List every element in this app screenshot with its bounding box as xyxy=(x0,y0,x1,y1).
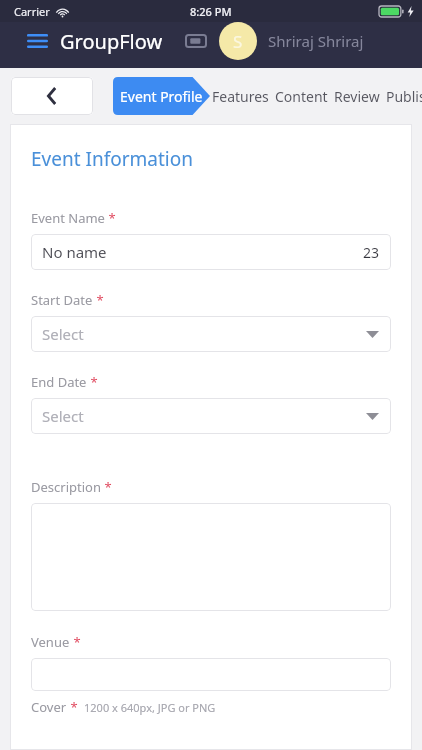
staticText: Content xyxy=(275,87,328,106)
button[interactable]: Event Profile xyxy=(113,77,210,115)
button[interactable]: Publish xyxy=(383,77,422,115)
staticText: * xyxy=(105,209,116,227)
staticText: Venue xyxy=(31,633,70,651)
staticText: Select xyxy=(42,324,84,344)
button[interactable] xyxy=(31,503,391,611)
staticText: Carrier xyxy=(14,4,50,19)
button[interactable]: S xyxy=(219,22,257,60)
button[interactable]: Open navigation menu xyxy=(25,27,49,55)
staticText: * xyxy=(87,373,98,391)
staticText: * xyxy=(101,478,112,496)
button[interactable]: Content xyxy=(272,77,331,115)
staticText: Event Name xyxy=(31,209,105,227)
staticText: 23 xyxy=(363,243,380,262)
button[interactable]: Select xyxy=(31,398,391,434)
staticText: * xyxy=(67,698,78,716)
staticText: Event Information xyxy=(31,146,193,172)
button[interactable]: Select xyxy=(31,316,391,352)
staticText: Review xyxy=(334,87,380,106)
button[interactable] xyxy=(31,658,391,691)
staticText: * xyxy=(93,291,104,309)
button[interactable]: No name xyxy=(31,234,391,270)
staticText: Start Date xyxy=(31,291,93,309)
staticText: * xyxy=(70,633,81,651)
button[interactable]: Back xyxy=(11,77,93,115)
staticText: 8:26 PM xyxy=(190,4,232,19)
button[interactable]: GroupFlow xyxy=(60,28,163,55)
staticText: End Date xyxy=(31,373,87,391)
staticText: S xyxy=(233,30,243,53)
button[interactable]: Tickets xyxy=(181,28,211,54)
button[interactable]: Features xyxy=(209,77,272,115)
staticText: Cover xyxy=(31,698,67,716)
staticText: Description xyxy=(31,478,101,496)
staticText: Publish xyxy=(386,87,422,106)
staticText: Event Profile xyxy=(120,87,203,106)
staticText: Features xyxy=(212,87,269,106)
staticText: Select xyxy=(42,406,84,426)
button[interactable]: Review xyxy=(331,77,383,115)
staticText: 1200 x 640px, JPG or PNG xyxy=(84,700,216,715)
staticText: No name xyxy=(42,242,107,262)
button[interactable]: Shriraj Shriraj xyxy=(268,31,364,51)
